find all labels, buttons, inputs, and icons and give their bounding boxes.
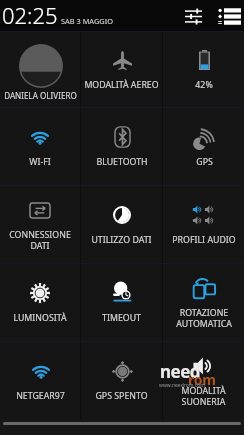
button[interactable]: LUMINOSITÀ (0, 264, 80, 341)
button[interactable]: 42% (163, 32, 244, 107)
button[interactable]: BLUETOOTH (81, 108, 162, 185)
button[interactable]: CONNESSIONE DATI (0, 186, 80, 263)
staticText: LUMINOSITÀ (13, 312, 67, 324)
staticText: GPS (196, 156, 213, 168)
button[interactable]: TIMEOUT (81, 264, 162, 341)
button[interactable]: Notifications (216, 3, 242, 29)
button[interactable]: Quick settings (181, 4, 205, 28)
staticText: need (160, 360, 201, 383)
staticText: UTILIZZO DATI (91, 234, 152, 246)
staticText: TIMEOUT (102, 312, 141, 324)
button[interactable]: GPS (163, 108, 244, 185)
button[interactable]: UTILIZZO DATI (81, 186, 162, 263)
staticText: MODALITÀ SUONERIA (181, 385, 226, 407)
button[interactable]: ROTAZIONE AUTOMATICA (163, 264, 244, 341)
staticText: NETGEAR97 (16, 390, 65, 402)
staticText: ROTAZIONE AUTOMATICA (176, 307, 232, 329)
staticText: www.needrom.com (159, 382, 205, 389)
staticText: rom (188, 370, 216, 389)
button[interactable]: NETGEAR97 (0, 342, 80, 419)
button[interactable]: MODALITÀ SUONERIA (163, 342, 244, 419)
button[interactable]: PROFILI AUDIO (163, 186, 244, 263)
staticText: BLUETOOTH (96, 156, 148, 168)
staticText: SAB 3 MAGGIO (61, 16, 113, 26)
staticText: CONNESSIONE DATI (9, 229, 71, 251)
button[interactable]: DANIELA OLIVIERO (0, 32, 80, 107)
staticText: PROFILI AUDIO (172, 234, 236, 246)
button[interactable]: GPS SPENTO (81, 342, 162, 419)
staticText: 42% (195, 79, 213, 91)
staticText: MODALITÀ AEREO (84, 79, 159, 91)
button[interactable]: MODALITÀ AEREO (81, 32, 162, 107)
staticText: GPS SPENTO (95, 390, 148, 402)
staticText: DANIELA OLIVIERO (4, 90, 77, 101)
staticText: 02:25 (2, 0, 58, 30)
button[interactable]: WI-FI (0, 108, 80, 185)
staticText: WI-FI (29, 156, 51, 168)
